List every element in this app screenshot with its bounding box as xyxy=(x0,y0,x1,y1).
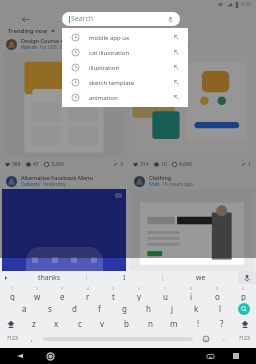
staticText: cat illustration xyxy=(89,49,130,57)
staticText: for UIB, 20 hours xyxy=(40,44,80,51)
button[interactable]: Home xyxy=(42,348,58,364)
staticText: Search xyxy=(71,14,94,24)
button[interactable]: ! xyxy=(186,316,210,331)
button[interactable]: 0 xyxy=(230,286,256,301)
staticText: 3 xyxy=(120,161,123,168)
button[interactable]: f xyxy=(87,301,112,316)
button[interactable]: Switch keyboard xyxy=(202,348,218,364)
staticText: 4,049 xyxy=(179,161,192,168)
staticText: 1 xyxy=(248,161,251,168)
staticText: 4 xyxy=(87,286,90,291)
button[interactable]: Search xyxy=(232,301,256,316)
button[interactable]: Space xyxy=(40,331,196,346)
staticText: s xyxy=(48,303,52,314)
staticText: p xyxy=(241,291,246,301)
staticText: k xyxy=(194,303,199,314)
button[interactable]: Expand toolbar xyxy=(0,271,12,284)
staticText: sketch template xyxy=(89,79,135,87)
button[interactable]: mobile app ux xyxy=(62,30,188,45)
button[interactable]: c xyxy=(68,316,91,331)
button[interactable]: ?123 xyxy=(0,331,24,346)
button[interactable]: x xyxy=(45,316,68,331)
button[interactable]: z xyxy=(22,316,45,331)
staticText: Wahab xyxy=(21,44,38,51)
button[interactable]: 7 xyxy=(152,286,178,301)
button[interactable]: 8 xyxy=(178,286,204,301)
button[interactable]: Voice search xyxy=(164,13,176,25)
staticText: n xyxy=(148,318,153,329)
button[interactable]: s xyxy=(37,301,62,316)
button[interactable]: j xyxy=(160,301,184,316)
button[interactable]: h xyxy=(136,301,160,316)
staticText: 0 xyxy=(242,286,245,291)
staticText: c xyxy=(78,318,82,329)
staticText: ?123 xyxy=(239,335,250,342)
button[interactable]: b xyxy=(114,316,138,331)
button[interactable]: d xyxy=(62,301,87,316)
button[interactable]: thanks xyxy=(12,271,86,284)
button[interactable]: Shift xyxy=(234,316,256,331)
button[interactable]: cat illustration xyxy=(62,45,188,60)
button[interactable]: m xyxy=(162,316,186,331)
button[interactable]: ? xyxy=(210,316,234,331)
button[interactable]: v xyxy=(91,316,114,331)
staticText: o xyxy=(215,291,220,301)
staticText: y xyxy=(137,291,142,301)
button[interactable]: Emoji xyxy=(196,331,216,346)
button[interactable]: Back xyxy=(12,348,28,364)
staticText: I xyxy=(123,273,126,283)
staticText: x xyxy=(54,318,59,329)
staticText: b xyxy=(124,318,129,329)
button[interactable]: k xyxy=(184,301,208,316)
staticText: m xyxy=(170,318,178,329)
button[interactable]: animation xyxy=(62,90,188,105)
staticText: 2 xyxy=(36,286,39,291)
staticText: 6 xyxy=(138,286,141,291)
button[interactable]: Comma xyxy=(24,331,40,346)
button[interactable]: Back xyxy=(16,10,34,28)
button[interactable]: 9 xyxy=(204,286,230,301)
staticText: 16 hours ago xyxy=(162,181,193,188)
button[interactable]: Recent apps xyxy=(228,348,244,364)
button[interactable]: Search xyxy=(62,12,180,26)
staticText: u xyxy=(163,291,168,301)
button[interactable]: we xyxy=(163,271,238,284)
staticText: 3 xyxy=(61,286,64,291)
staticText: Design Course App UI xyxy=(21,37,79,44)
button[interactable]: Shift xyxy=(0,316,22,331)
staticText: Alternative Facebook Menu xyxy=(21,174,93,181)
button[interactable]: g xyxy=(112,301,136,316)
button[interactable]: 1 xyxy=(0,286,25,301)
button[interactable]: 2 xyxy=(25,286,50,301)
button[interactable]: sketch template xyxy=(62,75,188,90)
staticText: h xyxy=(146,303,151,314)
button[interactable]: 3 xyxy=(50,286,75,301)
staticText: Shot (Version) xyxy=(149,37,186,44)
button[interactable]: Period xyxy=(216,331,232,346)
button[interactable]: Alternative Facebook Menu xyxy=(0,173,128,273)
staticText: 5 xyxy=(112,286,115,291)
button[interactable]: ?123 xyxy=(232,331,256,346)
staticText: Shib xyxy=(149,181,160,188)
button[interactable]: 4 xyxy=(75,286,100,301)
button[interactable]: 6 xyxy=(126,286,152,301)
button[interactable]: I xyxy=(87,271,162,284)
staticText: 9 xyxy=(216,286,219,291)
staticText: ! xyxy=(197,318,200,329)
button[interactable]: illustration xyxy=(62,60,188,75)
button[interactable]: Design Course App UI xyxy=(0,36,128,170)
staticText: 7 xyxy=(164,286,167,291)
button[interactable]: Clothing xyxy=(128,173,256,273)
staticText: mobile app ux xyxy=(89,34,130,42)
staticText: , xyxy=(31,334,33,344)
button[interactable]: Shot (Version) xyxy=(128,36,256,170)
button[interactable]: Voice input xyxy=(238,271,256,284)
button[interactable]: a xyxy=(12,301,37,316)
staticText: thanks xyxy=(38,273,61,283)
button[interactable]: l xyxy=(208,301,232,316)
button[interactable]: 5 xyxy=(100,286,126,301)
button[interactable]: n xyxy=(138,316,162,331)
staticText: i xyxy=(190,291,193,301)
staticText: r xyxy=(86,291,90,301)
